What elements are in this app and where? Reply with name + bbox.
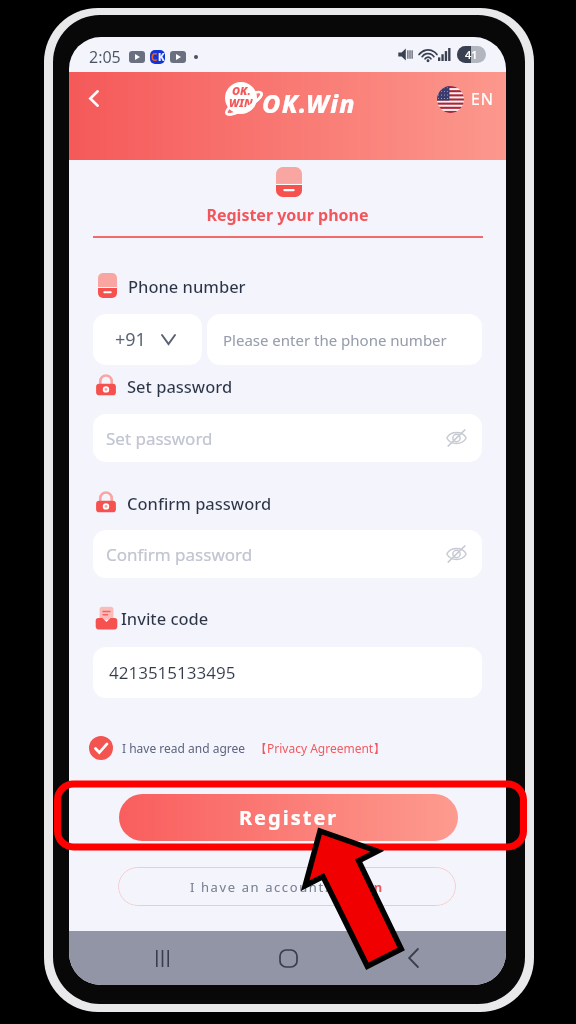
button[interactable]: Please enter the phone number [207,314,482,365]
staticText: Invite code [121,607,209,629]
staticText: Confirm password [127,492,272,514]
staticText: Set password [127,375,233,397]
button[interactable]: EN [437,85,494,113]
staticText: 4213515133495 [109,661,236,684]
staticText: Register your phone [69,204,506,226]
button[interactable]: I have read and agree [89,735,386,760]
staticText: 41 [465,47,478,62]
button[interactable]: Back [72,76,116,120]
staticText: Phone number [128,275,246,297]
staticText: Register [239,804,339,831]
button[interactable]: Confirm password [93,530,482,578]
staticText: 【Privacy Agreement】 [255,740,386,756]
button[interactable]: 4213515133495 [93,647,482,698]
button[interactable]: I have an account. [118,867,456,906]
staticText: OK. [232,83,251,98]
button[interactable]: +91 [93,314,202,365]
staticText: OK.Win [262,86,356,120]
staticText: EN [471,88,494,110]
staticText: Please enter the phone number [223,330,447,350]
staticText: I have an account. [190,878,330,896]
staticText: 2:05 [89,46,121,68]
button[interactable]: Register [119,794,458,841]
staticText: +91 [115,327,146,352]
staticText: Log in [330,878,384,896]
button[interactable]: Home [264,934,312,982]
staticText: I have read and agree [122,740,246,756]
staticText: C [151,50,158,64]
button[interactable]: Recents [138,934,186,982]
button[interactable]: Back [389,934,437,982]
staticText: WIN [229,95,253,110]
staticText: Confirm password [106,543,253,566]
button[interactable]: Show password [441,539,471,569]
staticText: K [158,50,165,64]
staticText: Set password [106,427,213,450]
button[interactable]: Show password [441,423,471,453]
button[interactable]: Set password [93,414,482,462]
